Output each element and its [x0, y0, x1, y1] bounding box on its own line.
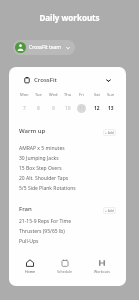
- staticText: 7: [23, 105, 26, 112]
- button[interactable]: + Add: [104, 130, 115, 135]
- staticText: Fri: [79, 92, 84, 97]
- button[interactable]: Workouts: [88, 256, 116, 277]
- button[interactable]: + Add: [104, 208, 115, 213]
- staticText: CrossFit: [34, 76, 57, 84]
- button[interactable]: CrossFit: [9, 74, 126, 86]
- staticText: 13: [108, 105, 114, 112]
- button[interactable]: CrossFit team: [13, 40, 75, 55]
- staticText: Workouts: [94, 269, 110, 274]
- staticText: Home: [25, 269, 35, 274]
- staticText: 10: [65, 105, 71, 112]
- button[interactable]: Thu: [63, 92, 72, 113]
- staticText: 8: [37, 105, 40, 112]
- staticText: Warm up: [19, 127, 46, 135]
- button[interactable]: Home: [19, 256, 41, 277]
- staticText: Tue: [35, 92, 42, 97]
- staticText: 5/5 Side Plank Rotations: [19, 185, 76, 192]
- staticText: Mon: [20, 92, 29, 97]
- staticText: 30 Jumping Jacks: [19, 155, 59, 162]
- other: Home: [26, 259, 34, 267]
- staticText: Sat: [94, 92, 100, 97]
- staticText: 9: [52, 105, 55, 112]
- other: Schedule: [61, 259, 69, 267]
- staticText: 12: [94, 105, 100, 112]
- staticText: Wed: [49, 92, 58, 97]
- staticText: Schedule: [57, 269, 72, 274]
- staticText: Fran: [19, 205, 32, 213]
- staticText: 20 Alt. Shoulder Taps: [19, 175, 69, 182]
- staticText: 21-15-9 Reps For Time: [19, 218, 72, 225]
- button[interactable]: Sun: [106, 92, 115, 113]
- staticText: + Add: [105, 131, 114, 135]
- staticText: Thrusters (95/65 lb): [19, 228, 65, 235]
- button[interactable]: Wed: [49, 92, 58, 113]
- staticText: AMRAP x 5 minutes: [19, 145, 65, 152]
- staticText: CrossFit team: [29, 44, 62, 51]
- button[interactable]: Mon: [20, 92, 29, 113]
- staticText: Sun: [107, 92, 115, 97]
- staticText: Thu: [64, 92, 72, 97]
- button[interactable]: Tue: [34, 92, 43, 113]
- button[interactable]: Schedule: [51, 256, 78, 277]
- staticText: Pull-Ups: [19, 238, 39, 245]
- staticText: 15 Box Step Overs: [19, 165, 62, 172]
- staticText: 11: [79, 105, 85, 112]
- other: Workouts: [98, 259, 106, 267]
- button[interactable]: Sat: [92, 92, 101, 113]
- button[interactable]: Fri: [77, 92, 86, 113]
- staticText: Daily workouts: [0, 12, 139, 23]
- staticText: + Add: [105, 209, 114, 213]
